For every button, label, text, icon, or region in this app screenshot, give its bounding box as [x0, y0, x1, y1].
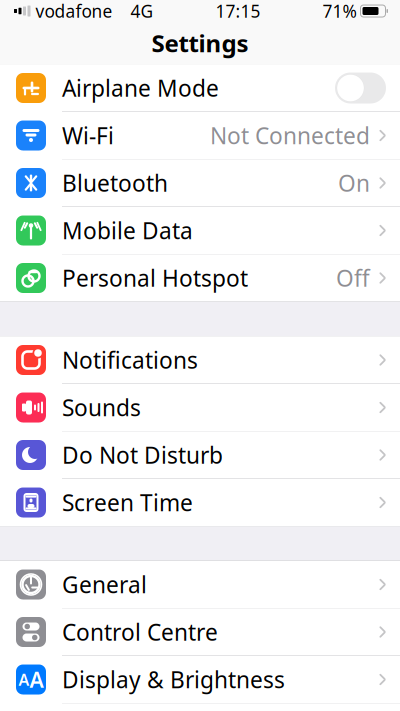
button[interactable]: Sounds: [0, 384, 400, 431]
button[interactable]: Screen Time: [0, 479, 400, 526]
staticText: Display & Brightness: [62, 664, 285, 694]
staticText: Not Connected: [210, 120, 370, 150]
staticText: Sounds: [62, 392, 141, 422]
staticText: A: [18, 669, 29, 690]
button[interactable]: Notifications: [0, 336, 400, 383]
staticText: Settings: [151, 27, 248, 59]
staticText: General: [62, 569, 147, 599]
staticText: Wi-Fi: [62, 120, 114, 150]
staticText: A: [29, 665, 43, 694]
button[interactable]: Control Centre: [0, 608, 400, 655]
staticText: Personal Hotspot: [62, 263, 248, 293]
staticText: 4G: [130, 0, 153, 22]
staticText: 17:15: [215, 0, 260, 22]
button[interactable]: Do Not Disturb: [0, 431, 400, 478]
staticText: Airplane Mode: [62, 73, 219, 103]
staticText: Do Not Disturb: [62, 440, 223, 470]
staticText: vodafone: [35, 0, 112, 22]
staticText: Bluetooth: [62, 168, 168, 198]
staticText: 71%: [322, 0, 356, 22]
button[interactable]: Bluetooth: [0, 159, 400, 206]
button[interactable]: A: [0, 656, 400, 703]
staticText: Off: [336, 263, 370, 293]
button[interactable]: General: [0, 561, 400, 608]
staticText: Notifications: [62, 345, 198, 375]
staticText: Screen Time: [62, 487, 193, 517]
staticText: Control Centre: [62, 617, 218, 647]
staticText: Mobile Data: [62, 215, 193, 245]
button[interactable]: Airplane Mode: [0, 64, 400, 111]
button[interactable]: Personal Hotspot: [0, 254, 400, 301]
button[interactable]: Wi-Fi: [0, 112, 400, 159]
staticText: On: [338, 168, 370, 198]
button[interactable]: Mobile Data: [0, 207, 400, 254]
